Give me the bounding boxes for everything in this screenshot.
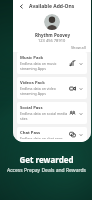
staticText: Videos Pack (20, 80, 45, 86)
button[interactable]: Videos Pack (17, 77, 87, 99)
staticText: Get rewarded (19, 154, 74, 165)
staticText: Rhythm Poovey (35, 32, 70, 38)
other: Expand (77, 85, 84, 92)
other: Social Pass (68, 109, 77, 118)
other: Expand (77, 110, 84, 117)
staticText: Endless data on music (20, 61, 57, 66)
button[interactable]: Social Pass (17, 102, 87, 124)
other: Expand (77, 131, 84, 138)
staticText: Endless data on video (20, 86, 56, 91)
staticText: Music Pack (20, 55, 44, 61)
staticText: streaming Apps (20, 91, 46, 96)
other: Videos Pack (68, 84, 77, 93)
button[interactable]: Back (17, 2, 25, 10)
other: Expand (77, 60, 84, 67)
button[interactable]: Music Pack (17, 52, 87, 74)
staticText: sites (20, 116, 28, 121)
button[interactable]: Chat Pass (17, 127, 87, 142)
button[interactable]: Show all (71, 45, 86, 50)
staticText: streaming Apps (20, 66, 46, 71)
staticText: Access Prepay Deals and Rewards (7, 167, 86, 174)
staticText: 123 456 78910 (38, 38, 66, 43)
staticText: Endless data on social media (20, 111, 68, 116)
other: Chat Pass (68, 130, 77, 139)
staticText: Social Pass (20, 105, 43, 111)
staticText: Available Add-Ons (29, 3, 75, 10)
staticText: Endless data on chat apps (20, 136, 63, 139)
other: Music Pack (68, 59, 77, 68)
staticText: Chat Pass (20, 130, 41, 136)
staticText: Show all (71, 45, 86, 50)
